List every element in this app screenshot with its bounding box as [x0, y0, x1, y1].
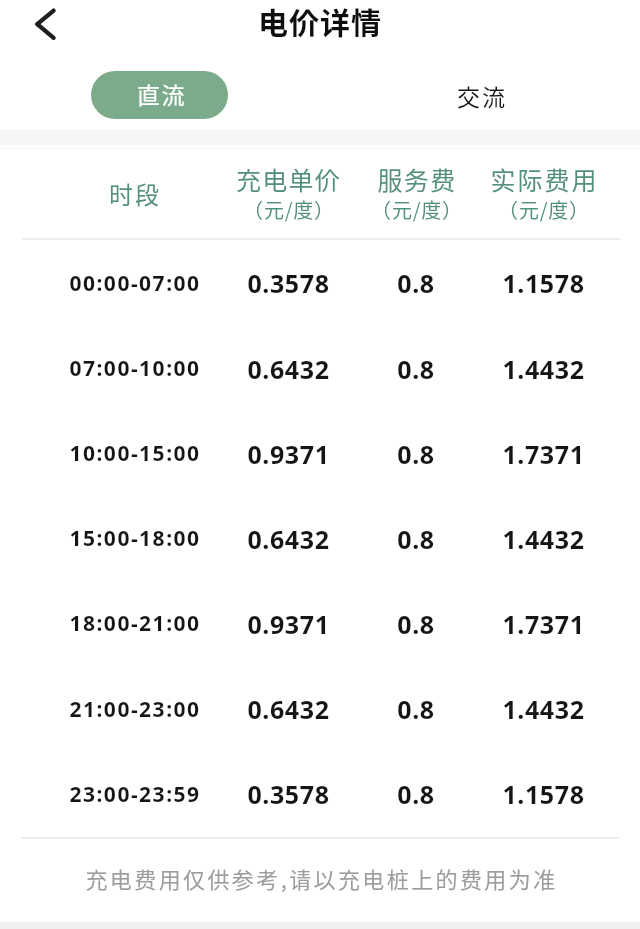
- button[interactable]: 交流: [411, 71, 548, 119]
- staticText: 21:00-23:00: [69, 695, 201, 724]
- staticText: 23:00-23:59: [69, 780, 201, 809]
- staticText: 0.6432: [247, 352, 330, 386]
- button[interactable]: Back: [10, 0, 80, 52]
- staticText: 0.6432: [247, 522, 330, 556]
- staticText: 1.1578: [502, 777, 585, 811]
- staticText: 1.7371: [502, 437, 585, 471]
- staticText: 实际费用: [490, 161, 599, 197]
- staticText: 0.6432: [247, 692, 330, 726]
- staticText: 服务费: [377, 161, 457, 197]
- staticText: 充电单价: [236, 161, 341, 197]
- staticText: 0.8: [397, 352, 435, 386]
- staticText: 0.8: [397, 607, 435, 641]
- staticText: 0.9371: [247, 437, 330, 471]
- staticText: 直流: [137, 77, 187, 110]
- staticText: （元/度）: [498, 195, 590, 224]
- staticText: 0.8: [397, 522, 435, 556]
- staticText: （元/度）: [371, 195, 463, 224]
- staticText: 0.8: [397, 777, 435, 811]
- staticText: 1.4432: [502, 692, 585, 726]
- staticText: 1.7371: [502, 607, 585, 641]
- staticText: （元/度）: [243, 195, 335, 224]
- staticText: 时段: [109, 176, 161, 211]
- staticText: 1.4432: [502, 352, 585, 386]
- staticText: 0.9371: [247, 607, 330, 641]
- staticText: 0.3578: [247, 266, 330, 300]
- button[interactable]: 直流: [91, 71, 228, 119]
- staticText: 0.8: [397, 437, 435, 471]
- staticText: 0.8: [397, 266, 435, 300]
- staticText: 18:00-21:00: [69, 609, 201, 638]
- staticText: 15:00-18:00: [69, 524, 201, 553]
- staticText: 充电费用仅供参考,请以充电桩上的费用为准: [85, 862, 558, 894]
- staticText: 00:00-07:00: [69, 269, 201, 298]
- staticText: 电价详情: [258, 0, 382, 42]
- staticText: 1.4432: [502, 522, 585, 556]
- staticText: 1.1578: [502, 266, 585, 300]
- staticText: 0.8: [397, 692, 435, 726]
- staticText: 10:00-15:00: [69, 439, 201, 468]
- staticText: 交流: [456, 79, 506, 112]
- staticText: 0.3578: [247, 777, 330, 811]
- staticText: 07:00-10:00: [69, 354, 201, 383]
